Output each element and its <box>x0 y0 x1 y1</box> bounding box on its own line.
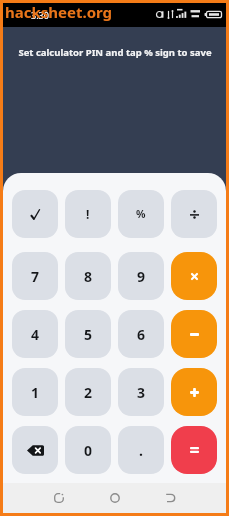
staticText: % <box>136 207 146 221</box>
button[interactable]: . <box>118 426 164 474</box>
staticText: 9 <box>137 267 146 286</box>
staticText: hacksheet.org <box>5 2 113 22</box>
button[interactable]: Subtract <box>171 310 217 358</box>
button[interactable]: Square root <box>12 190 58 238</box>
staticText: ! <box>86 206 90 222</box>
staticText: 3 <box>137 383 146 402</box>
staticText: 1 <box>31 383 40 402</box>
button[interactable]: Divide <box>171 190 217 238</box>
staticText: 8 <box>84 267 93 286</box>
button[interactable]: Equals <box>171 426 217 474</box>
button[interactable]: 6 <box>118 310 164 358</box>
button[interactable]: 7 <box>12 252 58 300</box>
button[interactable]: Multiply <box>171 252 217 300</box>
button[interactable]: 4 <box>12 310 58 358</box>
button[interactable]: 2 <box>65 368 111 416</box>
staticText: 3:30 <box>31 9 49 21</box>
button[interactable]: Recents <box>44 483 74 513</box>
staticText: 6 <box>137 325 146 344</box>
button[interactable]: 9 <box>118 252 164 300</box>
staticText: . <box>139 441 143 460</box>
button[interactable]: Factorial <box>65 190 111 238</box>
button[interactable]: 8 <box>65 252 111 300</box>
button[interactable]: 0 <box>65 426 111 474</box>
button[interactable]: Home <box>100 483 130 513</box>
staticText: Set calculator PIN and tap % sign to sav… <box>18 46 212 59</box>
button[interactable]: 3 <box>118 368 164 416</box>
button[interactable]: 5 <box>65 310 111 358</box>
staticText: 0 <box>84 441 93 460</box>
button[interactable]: 1 <box>12 368 58 416</box>
button[interactable]: Backspace <box>12 426 58 474</box>
staticText: 5 <box>84 325 93 344</box>
button[interactable]: Percent <box>118 190 164 238</box>
button[interactable]: Add <box>171 368 217 416</box>
button[interactable]: Back <box>156 483 186 513</box>
staticText: 2 <box>84 383 93 402</box>
staticText: 7 <box>31 267 40 286</box>
staticText: 4 <box>31 325 40 344</box>
